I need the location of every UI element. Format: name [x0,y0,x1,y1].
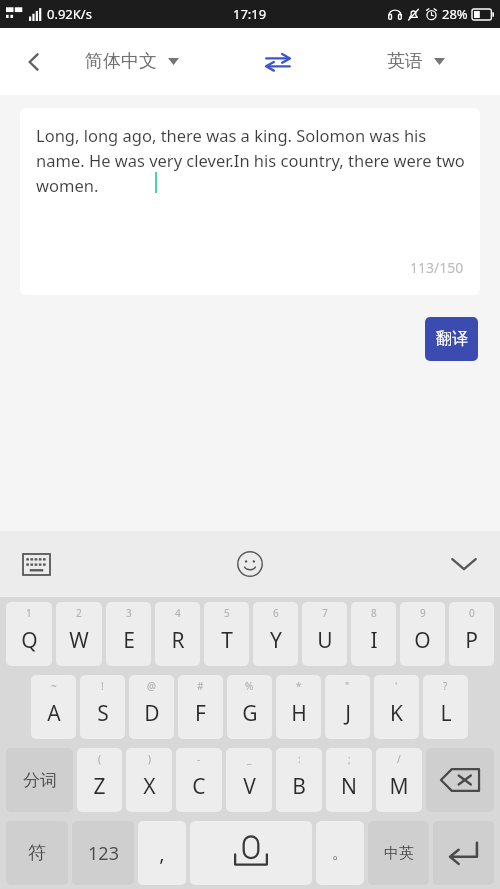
button[interactable]: ; [326,748,372,812]
button[interactable]: # [178,675,223,739]
staticText: E [123,626,135,655]
button[interactable]: ! [80,675,125,739]
staticText: I [370,626,378,655]
button[interactable]: ' [374,675,419,739]
button[interactable]: ) [126,748,172,812]
button[interactable]: 3 [106,602,151,666]
button[interactable]: 9 [400,602,445,666]
staticText: X [143,772,156,801]
staticText: R [171,626,185,655]
button[interactable]: : [276,748,322,812]
staticText: B [292,772,306,801]
button[interactable]: " [325,675,370,739]
button[interactable]: _ [226,748,272,812]
staticText: 113/150 [410,258,464,277]
staticText: 2 [76,606,82,620]
staticText: @ [147,679,156,693]
staticText: _ [247,752,252,766]
staticText: F [195,699,206,728]
staticText: 1 [26,606,32,620]
button[interactable]: Voice input [190,821,312,885]
staticText: ; [348,752,351,766]
staticText: 英语 [387,50,423,73]
staticText: ? [443,679,448,693]
staticText: ! [101,679,104,693]
staticText: G [242,699,258,728]
staticText: 4 [175,606,181,620]
staticText: 中英 [384,844,414,863]
staticText: % [245,679,254,693]
staticText: * [296,679,302,693]
button[interactable]: Emoji [228,542,272,586]
staticText: A [47,699,61,728]
staticText: N [341,772,357,801]
button[interactable]: 简体中文 [85,50,179,73]
staticText: 123 [88,841,119,866]
staticText: D [144,699,160,728]
staticText: - [197,752,201,766]
button[interactable]: 5 [204,602,249,666]
staticText: H [291,699,307,728]
button[interactable]: 7 [302,602,347,666]
staticText: 。 [332,843,348,863]
button[interactable]: 。 [316,821,364,885]
button[interactable]: ? [423,675,468,739]
button[interactable]: 0 [449,602,494,666]
staticText: L [440,699,452,728]
button[interactable]: 4 [155,602,200,666]
button[interactable]: 1 [6,602,52,666]
button[interactable]: @ [129,675,174,739]
staticText: 9 [420,606,426,620]
button[interactable]: Hide keyboard [442,542,486,586]
button[interactable]: 123 [72,821,134,885]
staticText: 简体中文 [85,50,157,73]
button[interactable]: % [227,675,272,739]
staticText: C [192,772,206,801]
button[interactable]: 分词 [6,748,73,812]
staticText: 8 [371,606,377,620]
button[interactable]: Swap languages [254,38,302,86]
button[interactable]: 英语 [387,50,445,73]
staticText: Z [93,772,106,801]
staticText: M [389,772,409,801]
button[interactable]: 8 [351,602,396,666]
staticText: 翻译 [436,329,468,349]
staticText: T [221,626,233,655]
button[interactable]: ~ [31,675,76,739]
staticText: : [298,752,301,766]
staticText: 分词 [23,770,57,791]
staticText: U [317,626,333,655]
button[interactable]: , [138,821,186,885]
button[interactable]: 2 [56,602,102,666]
staticText: W [69,626,89,655]
staticText: , [159,840,165,867]
button[interactable]: Enter [433,821,494,885]
staticText: O [414,626,431,655]
button[interactable]: Back [8,36,60,88]
staticText: Long, long ago, there was a king. Solomo… [36,124,466,196]
staticText: P [465,626,478,655]
button[interactable]: Keyboard settings [14,542,58,586]
button[interactable]: * [276,675,321,739]
staticText: 5 [224,606,230,620]
button[interactable]: Long, long ago, there was a king. Solomo… [20,108,480,295]
button[interactable]: 6 [253,602,298,666]
button[interactable]: 符 [6,821,68,885]
staticText: Q [21,626,38,655]
button[interactable]: 中英 [368,821,429,885]
staticText: 符 [28,842,46,865]
button[interactable]: 翻译 [425,317,478,361]
staticText: J [345,699,351,728]
button[interactable]: Backspace [426,748,494,812]
staticText: ' [395,679,398,693]
button[interactable]: - [176,748,222,812]
staticText: S [97,699,109,728]
button[interactable]: ( [77,748,122,812]
staticText: 6 [273,606,279,620]
staticText: 0.92K/s [47,5,92,23]
staticText: / [397,752,401,766]
staticText: 0 [469,606,475,620]
button[interactable]: / [376,748,422,812]
staticText: ( [98,752,101,766]
staticText: Y [270,626,282,655]
